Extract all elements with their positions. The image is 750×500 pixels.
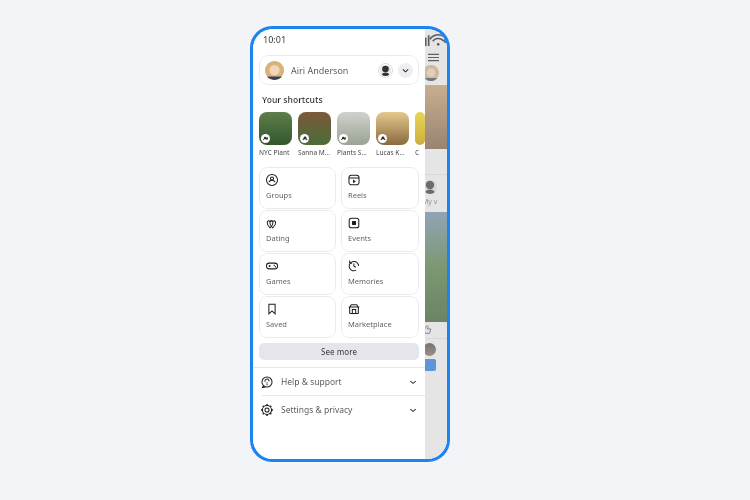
button[interactable]: Memories xyxy=(341,253,419,295)
staticText: Events xyxy=(348,233,372,243)
staticText: NYC Plant xyxy=(259,148,290,157)
button[interactable]: Plants S... xyxy=(337,112,372,157)
button[interactable]: Switch profile xyxy=(378,63,393,78)
button[interactable]: NYC Plant xyxy=(259,112,294,157)
button[interactable]: See more xyxy=(259,343,419,360)
staticText: Dating xyxy=(266,233,290,243)
staticText: Settings & privacy xyxy=(281,404,409,416)
staticText: Groups xyxy=(266,190,292,200)
button[interactable]: Events xyxy=(341,210,419,252)
button[interactable]: Reels xyxy=(341,167,419,209)
button[interactable]: Settings & privacy xyxy=(253,396,425,423)
button[interactable]: Groups xyxy=(259,167,336,209)
staticText: Sanna M... xyxy=(298,148,331,157)
staticText: Saved xyxy=(266,319,287,329)
staticText: My v xyxy=(422,197,438,207)
button[interactable]: Marketplace xyxy=(341,296,419,338)
button[interactable]: Dating xyxy=(259,210,336,252)
staticText: Memories xyxy=(348,276,384,286)
button[interactable]: C xyxy=(415,112,425,157)
staticText: Your shortcuts xyxy=(262,94,323,106)
staticText: C xyxy=(415,148,420,157)
staticText: See more xyxy=(321,346,357,357)
staticText: Plants S... xyxy=(337,148,367,157)
button[interactable]: Help & support xyxy=(253,368,425,395)
button[interactable]: Lucas K... xyxy=(376,112,411,157)
staticText: Help & support xyxy=(281,376,409,388)
staticText: Marketplace xyxy=(348,319,392,329)
button[interactable]: Sanna M... xyxy=(298,112,333,157)
staticText: Reels xyxy=(348,190,367,200)
staticText: Lucas K... xyxy=(376,148,405,157)
staticText: 10:01 xyxy=(263,33,287,45)
staticText: Games xyxy=(266,276,291,286)
other: Menu xyxy=(428,52,439,63)
button[interactable]: Saved xyxy=(259,296,336,338)
button[interactable]: Airi Anderson xyxy=(259,55,419,85)
staticText: Airi Anderson xyxy=(291,64,378,76)
button[interactable]: Games xyxy=(259,253,336,295)
button[interactable]: Expand xyxy=(398,63,413,78)
